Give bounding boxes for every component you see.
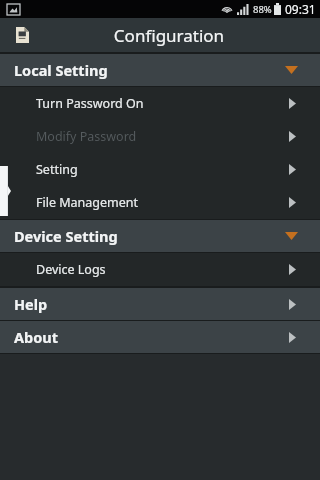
button[interactable]: Device Logs [0, 253, 320, 286]
staticText: 09:31 [285, 1, 316, 17]
staticText: File Management [36, 194, 139, 211]
button[interactable]: Modify Password [0, 120, 320, 153]
button[interactable]: Help [0, 288, 320, 320]
staticText: Modify Password [36, 128, 137, 145]
button[interactable]: About [0, 321, 320, 353]
button[interactable]: Configuration document [8, 21, 36, 49]
button[interactable]: Open navigation drawer [0, 166, 11, 216]
button[interactable]: File Management [0, 186, 320, 219]
button[interactable]: Local Setting [0, 54, 320, 86]
staticText: 88% [253, 3, 272, 16]
button[interactable]: Device Setting [0, 220, 320, 252]
staticText: Device Setting [14, 226, 118, 246]
staticText: Local Setting [14, 60, 108, 80]
button[interactable]: Setting [0, 153, 320, 186]
staticText: Device Logs [36, 261, 106, 278]
staticText: About [14, 327, 58, 347]
staticText: Help [14, 294, 48, 314]
staticText: Configuration [36, 24, 302, 47]
staticText: Setting [36, 161, 78, 178]
staticText: Turn Password On [36, 95, 144, 112]
button[interactable]: Turn Password On [0, 87, 320, 120]
